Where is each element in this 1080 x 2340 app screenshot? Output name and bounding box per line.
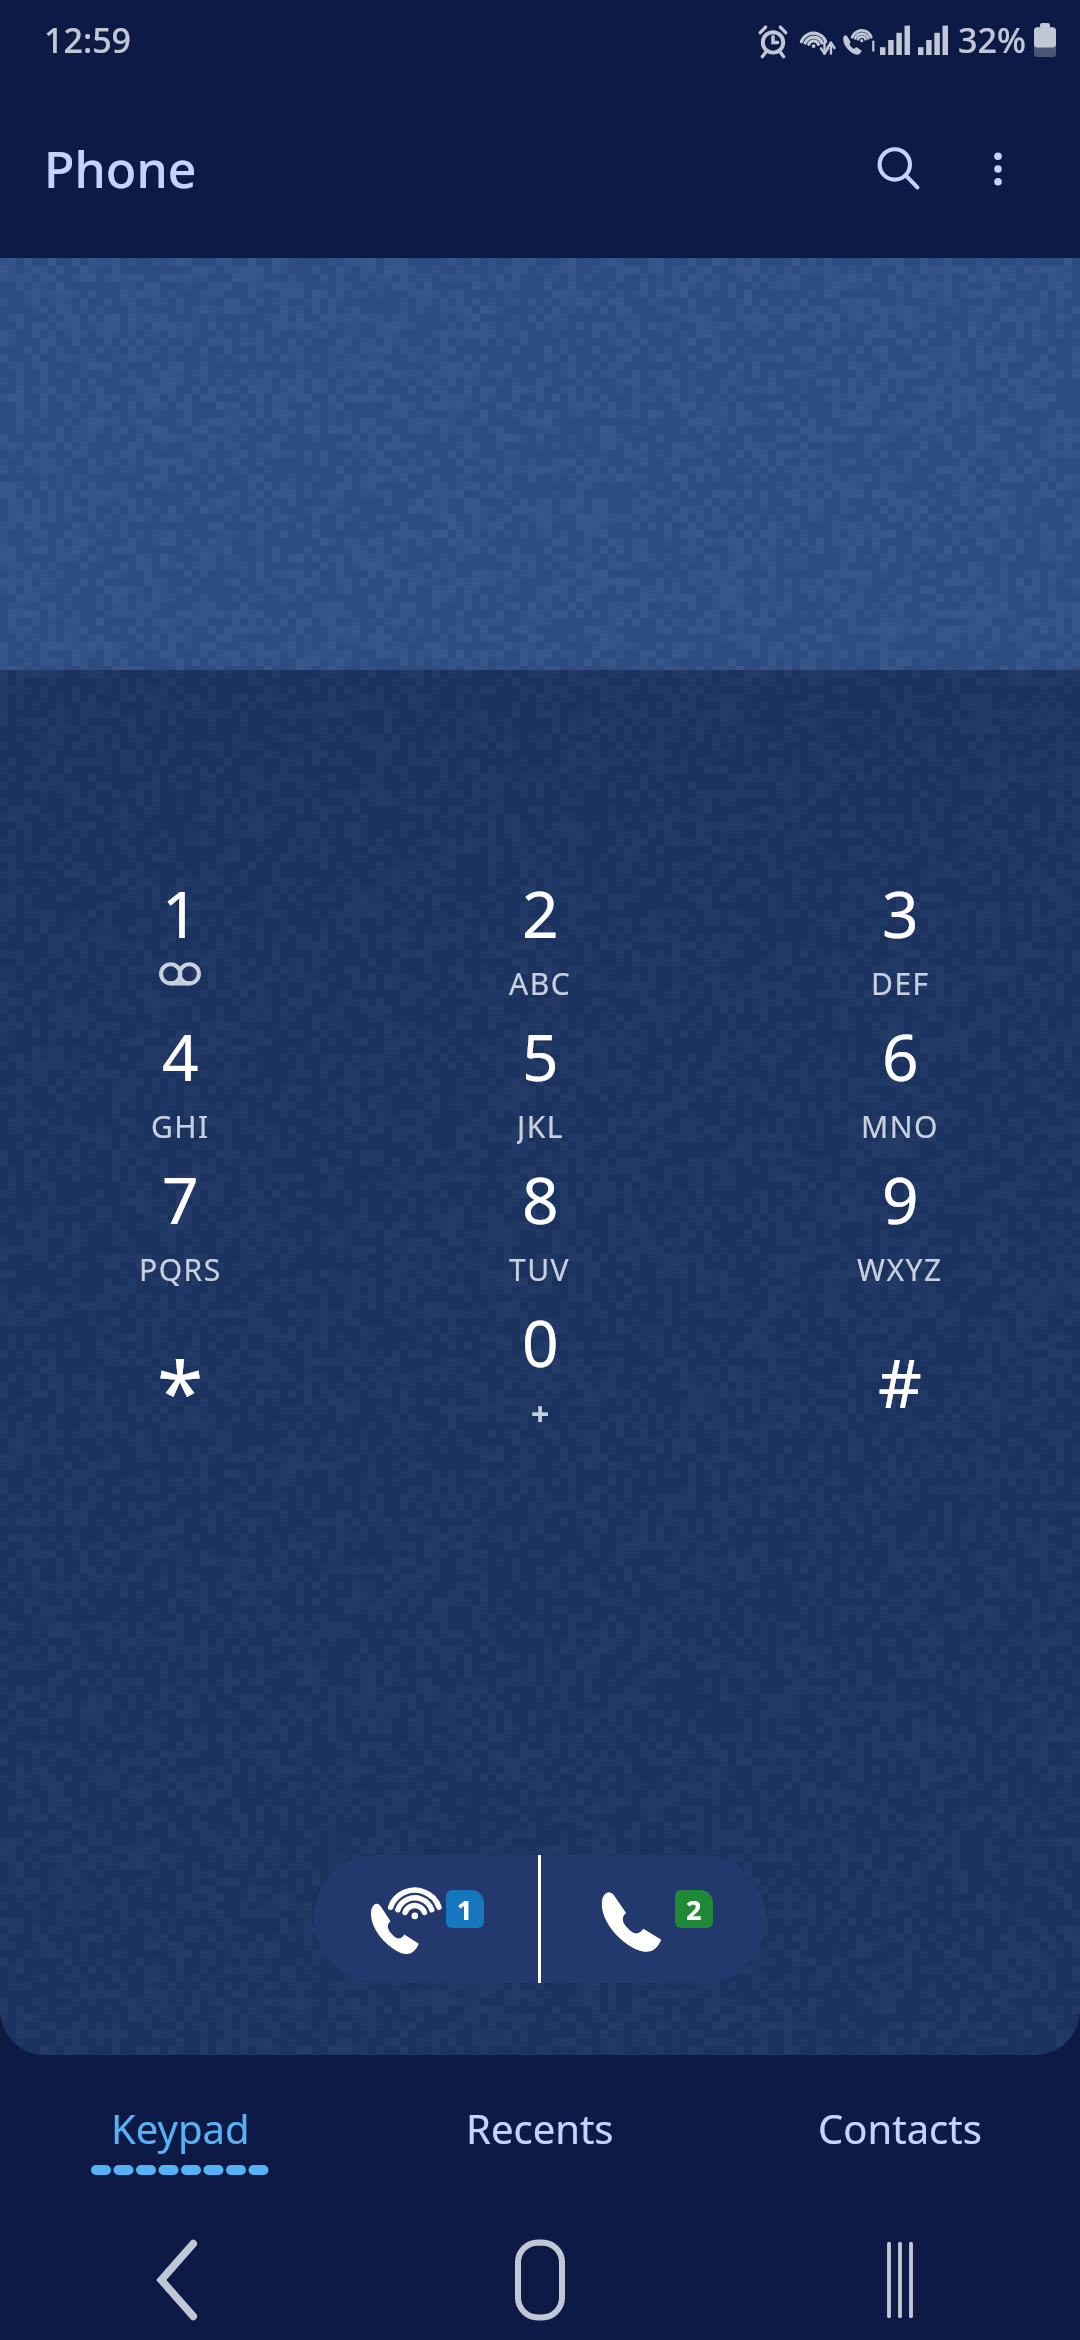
- staticText: TUV: [509, 1249, 571, 1289]
- staticText: PQRS: [139, 1249, 222, 1289]
- staticText: 7: [162, 1156, 199, 1243]
- button[interactable]: 1: [0, 860, 360, 1003]
- staticText: 9: [882, 1156, 919, 1243]
- staticText: ABC: [509, 963, 572, 1003]
- button[interactable]: More options: [948, 119, 1048, 219]
- staticText: Contacts: [818, 2101, 982, 2155]
- staticText: DEF: [871, 963, 930, 1003]
- staticText: Recents: [466, 2101, 614, 2155]
- staticText: 32%: [958, 17, 1026, 63]
- button[interactable]: [0, 258, 1080, 670]
- button[interactable]: 0: [360, 1289, 720, 1432]
- staticText: 0: [522, 1299, 559, 1386]
- staticText: 2: [686, 1891, 702, 1928]
- staticText: *: [157, 1333, 204, 1432]
- button[interactable]: 4: [0, 1003, 360, 1146]
- button[interactable]: 8: [360, 1146, 720, 1289]
- button[interactable]: *: [0, 1289, 360, 1432]
- staticText: 12:59: [44, 17, 132, 63]
- staticText: 3: [882, 870, 919, 957]
- button[interactable]: 5: [360, 1003, 720, 1146]
- staticText: MNO: [861, 1106, 939, 1146]
- button[interactable]: Back: [0, 2220, 360, 2340]
- button[interactable]: 9: [720, 1146, 1080, 1289]
- staticText: 1: [162, 870, 199, 957]
- staticText: GHI: [151, 1106, 210, 1146]
- button[interactable]: 7: [0, 1146, 360, 1289]
- button[interactable]: Keypad: [0, 2055, 360, 2220]
- button[interactable]: Call, SIM 2: [541, 1855, 766, 1983]
- staticText: #: [878, 1335, 922, 1428]
- staticText: +: [531, 1392, 550, 1432]
- staticText: Keypad: [111, 2101, 250, 2155]
- staticText: WXYZ: [857, 1249, 943, 1289]
- staticText: 2: [522, 870, 559, 957]
- button[interactable]: Contacts: [720, 2055, 1080, 2220]
- button[interactable]: Wi-Fi call, SIM 1: [314, 1855, 538, 1983]
- staticText: 1: [457, 1891, 473, 1928]
- button[interactable]: Search: [848, 119, 948, 219]
- button[interactable]: Recent apps: [720, 2220, 1080, 2340]
- staticText: 4: [162, 1013, 199, 1100]
- staticText: 8: [522, 1156, 559, 1243]
- staticText: JKL: [517, 1106, 564, 1146]
- staticText: Phone: [44, 135, 197, 203]
- staticText: 6: [882, 1013, 919, 1100]
- button[interactable]: #: [720, 1289, 1080, 1432]
- button[interactable]: Recents: [360, 2055, 720, 2220]
- button[interactable]: 6: [720, 1003, 1080, 1146]
- button[interactable]: Home: [360, 2220, 720, 2340]
- button[interactable]: 2: [360, 860, 720, 1003]
- button[interactable]: 3: [720, 860, 1080, 1003]
- staticText: 5: [522, 1013, 559, 1100]
